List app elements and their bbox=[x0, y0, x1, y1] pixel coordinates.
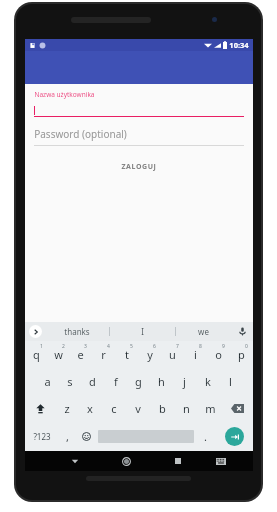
staticText: , bbox=[66, 429, 69, 444]
button[interactable]: h bbox=[150, 368, 173, 395]
staticText: 1 bbox=[40, 343, 43, 350]
button[interactable]: a bbox=[36, 368, 58, 395]
staticText: 6 bbox=[153, 343, 156, 350]
staticText: we bbox=[198, 326, 209, 337]
staticText: p bbox=[238, 347, 245, 362]
button[interactable]: y bbox=[138, 341, 161, 368]
staticText: v bbox=[135, 401, 141, 416]
staticText: . bbox=[204, 429, 207, 444]
staticText: j bbox=[183, 374, 186, 389]
button[interactable]: u bbox=[161, 341, 184, 368]
staticText: m bbox=[205, 401, 216, 416]
staticText: Password (optional) bbox=[34, 127, 127, 141]
staticText: 2 bbox=[62, 343, 65, 350]
button[interactable]: k bbox=[196, 368, 219, 395]
button[interactable]: n bbox=[174, 395, 198, 422]
button[interactable]: Home bbox=[96, 451, 156, 471]
staticText: ZALOGUJ bbox=[121, 162, 157, 172]
button[interactable]: . bbox=[196, 422, 215, 451]
staticText: 9 bbox=[222, 343, 225, 350]
staticText: r bbox=[101, 347, 106, 362]
button[interactable]: Voice input bbox=[231, 322, 253, 341]
button[interactable]: Password (optional) bbox=[25, 127, 253, 146]
button[interactable]: q bbox=[25, 341, 47, 368]
button[interactable]: t bbox=[115, 341, 138, 368]
staticText: o bbox=[215, 347, 222, 362]
staticText: 0 bbox=[245, 343, 248, 350]
button[interactable]: z bbox=[55, 395, 78, 422]
button[interactable]: I bbox=[110, 322, 175, 341]
staticText: f bbox=[114, 374, 118, 389]
staticText: h bbox=[158, 374, 165, 389]
button[interactable]: e bbox=[69, 341, 92, 368]
button[interactable]: d bbox=[81, 368, 104, 395]
button[interactable]: x bbox=[78, 395, 102, 422]
button[interactable]: Nazwa użytkownika bbox=[25, 84, 253, 117]
button[interactable]: i bbox=[184, 341, 207, 368]
button[interactable]: Switch keyboard bbox=[199, 451, 242, 471]
button[interactable]: Shift bbox=[25, 395, 55, 422]
button[interactable]: r bbox=[92, 341, 115, 368]
staticText: z bbox=[64, 401, 70, 416]
button[interactable]: thanks bbox=[45, 322, 109, 341]
button[interactable]: Expand suggestions bbox=[25, 322, 45, 341]
staticText: g bbox=[135, 374, 142, 389]
button[interactable]: v bbox=[126, 395, 150, 422]
button[interactable]: , bbox=[58, 422, 77, 451]
staticText: n bbox=[183, 401, 190, 416]
staticText: y bbox=[147, 347, 153, 362]
button[interactable]: ?123 bbox=[25, 422, 58, 451]
button[interactable]: Backspace bbox=[222, 395, 253, 422]
button[interactable]: s bbox=[58, 368, 81, 395]
staticText: l bbox=[229, 374, 232, 389]
button[interactable]: Emoji bbox=[77, 422, 96, 451]
button[interactable]: we bbox=[176, 322, 231, 341]
staticText: a bbox=[44, 374, 51, 389]
staticText: d bbox=[89, 374, 96, 389]
staticText: thanks bbox=[64, 326, 90, 337]
button[interactable]: p bbox=[230, 341, 253, 368]
button[interactable]: w bbox=[47, 341, 69, 368]
button[interactable]: j bbox=[173, 368, 196, 395]
button[interactable]: c bbox=[102, 395, 126, 422]
staticText: k bbox=[205, 374, 211, 389]
button[interactable]: Back bbox=[54, 451, 96, 471]
staticText: 5 bbox=[130, 343, 133, 350]
staticText: t bbox=[125, 347, 129, 362]
staticText: i bbox=[194, 347, 197, 362]
button[interactable]: f bbox=[104, 368, 127, 395]
button[interactable]: g bbox=[127, 368, 150, 395]
staticText: b bbox=[159, 401, 166, 416]
button[interactable]: ZALOGUJ bbox=[107, 157, 171, 177]
staticText: ?123 bbox=[33, 431, 51, 442]
staticText: I bbox=[141, 326, 144, 337]
staticText: w bbox=[54, 347, 63, 362]
staticText: q bbox=[33, 347, 40, 362]
staticText: s bbox=[67, 374, 73, 389]
staticText: 3 bbox=[84, 343, 87, 350]
staticText: 10:34 bbox=[229, 40, 249, 50]
button[interactable]: m bbox=[198, 395, 222, 422]
staticText: e bbox=[77, 347, 84, 362]
button[interactable]: Recents bbox=[156, 451, 199, 471]
staticText: Nazwa użytkownika bbox=[34, 90, 95, 99]
staticText: u bbox=[169, 347, 176, 362]
button[interactable]: b bbox=[150, 395, 174, 422]
staticText: c bbox=[111, 401, 117, 416]
button[interactable]: Next bbox=[215, 422, 253, 451]
staticText: 8 bbox=[199, 343, 202, 350]
button[interactable]: l bbox=[219, 368, 242, 395]
staticText: 7 bbox=[176, 343, 179, 350]
button[interactable]: o bbox=[207, 341, 230, 368]
staticText: x bbox=[87, 401, 93, 416]
staticText: 4 bbox=[107, 343, 110, 350]
